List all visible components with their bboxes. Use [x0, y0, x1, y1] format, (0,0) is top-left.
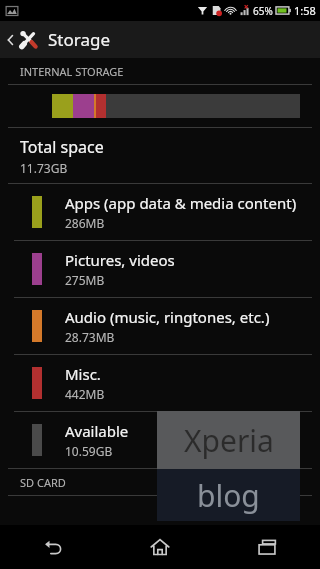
staticText: Misc.: [65, 364, 101, 384]
staticText: 286MB: [65, 215, 105, 231]
button[interactable]: Home: [106, 525, 213, 569]
staticText: 442MB: [65, 386, 105, 402]
staticText: 10.59GB: [65, 443, 113, 459]
button[interactable]: Up, Storage: [0, 21, 320, 58]
staticText: Xperia: [184, 420, 274, 461]
staticText: Audio (music, ringtones, etc.): [65, 307, 270, 327]
staticText: Total space: [20, 136, 104, 158]
button[interactable]: Audio (music, ringtones, etc.): [0, 298, 320, 354]
staticText: 275MB: [65, 272, 105, 288]
staticText: 65%: [253, 4, 273, 18]
button[interactable]: Apps (app data & media content): [0, 184, 320, 240]
button[interactable]: Recent apps: [213, 525, 320, 569]
staticText: Storage: [48, 28, 111, 51]
staticText: 1:58: [294, 3, 316, 18]
button[interactable]: Available: [0, 412, 320, 468]
staticText: Apps (app data & media content): [65, 193, 297, 213]
staticText: INTERNAL STORAGE: [20, 64, 124, 79]
staticText: 28.73MB: [65, 329, 115, 345]
staticText: SD CARD: [20, 475, 66, 490]
staticText: Pictures, videos: [65, 250, 175, 270]
button[interactable]: Back: [0, 525, 106, 569]
button[interactable]: Total space: [0, 128, 320, 183]
button[interactable]: Pictures, videos: [0, 241, 320, 297]
staticText: blog: [197, 475, 260, 516]
button[interactable]: Misc.: [0, 355, 320, 411]
staticText: 11.73GB: [20, 160, 68, 176]
staticText: Available: [65, 421, 129, 441]
